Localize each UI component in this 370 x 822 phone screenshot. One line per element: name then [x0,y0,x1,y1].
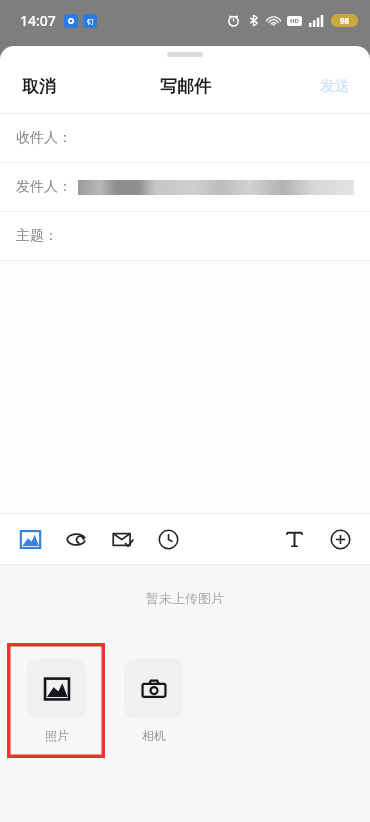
button[interactable]: 发件人： [0,163,370,211]
button[interactable]: Signature [53,516,99,562]
button[interactable]: Camera [112,643,194,758]
staticText: 14:07 [20,11,56,30]
button[interactable]: 取消 [0,66,78,107]
staticText: 写邮件 [160,76,211,97]
staticText: 暂未上传图片 [146,590,224,606]
button[interactable]: Schedule send [145,516,191,562]
staticText: 钉 [87,17,94,26]
button[interactable]: Read receipt [99,516,145,562]
other: Camera [124,659,183,743]
staticText: 收件人： [16,129,72,147]
other: Photos [27,659,86,743]
staticText: 发件人： [16,178,72,196]
staticText: 取消 [22,76,56,97]
button[interactable]: Insert image [7,516,53,562]
staticText: 照片 [45,728,69,743]
staticText: 发送 [320,77,350,96]
staticText: HD [290,17,299,25]
button[interactable]: 收件人： [0,114,370,162]
staticText: 主题： [16,227,58,245]
button[interactable]: Text format [271,516,317,562]
button[interactable]: 发送 [300,67,370,106]
button[interactable]: Photos [7,643,105,758]
button[interactable]: 主题： [0,212,370,260]
button[interactable]: More [317,516,363,562]
staticText: 相机 [142,728,166,743]
staticText: 98 [340,15,350,26]
